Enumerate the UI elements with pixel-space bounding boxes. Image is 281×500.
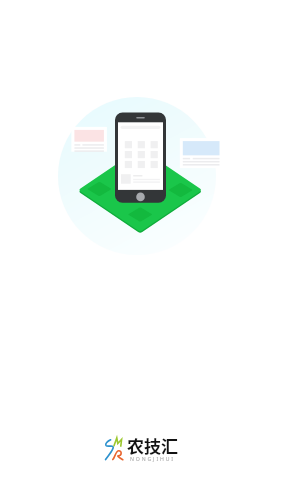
button[interactable]: 农技汇	[104, 436, 185, 463]
staticText: 农技汇	[127, 433, 178, 458]
staticText: NONGJIHUI	[130, 455, 175, 462]
